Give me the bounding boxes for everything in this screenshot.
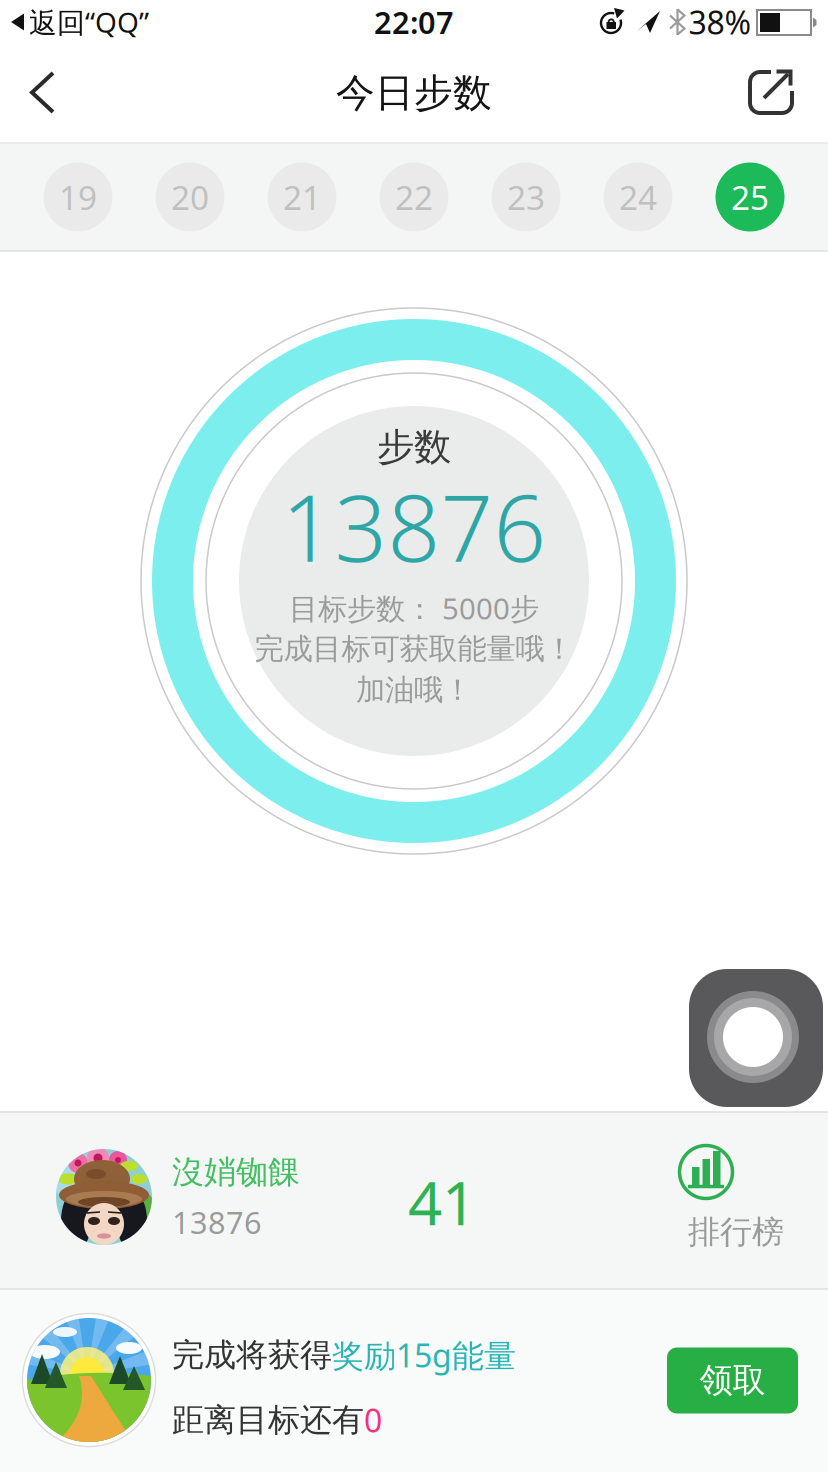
staticText: 距离目标还有 — [172, 1400, 364, 1440]
staticText: 排行榜 — [688, 1212, 784, 1252]
staticText: 38% — [688, 1, 751, 43]
staticText: 21 — [283, 175, 321, 219]
staticText: 22 — [395, 175, 433, 219]
staticText: 领取 — [699, 1360, 765, 1401]
staticText: 0 — [364, 1399, 382, 1441]
staticText: 今日步数 — [336, 69, 492, 117]
staticText: 步数 — [377, 424, 451, 470]
staticText: 完成将获得 — [172, 1335, 332, 1375]
staticText: 23 — [507, 175, 545, 219]
staticText: 返回“QQ” — [29, 3, 149, 41]
staticText: 13876 — [172, 1202, 262, 1242]
staticText: 13876 — [281, 465, 546, 587]
staticText: 加油哦！ — [356, 672, 472, 708]
staticText: 目标步数： 5000步 — [289, 588, 539, 627]
staticText: 19 — [59, 175, 97, 219]
staticText: 41 — [408, 1162, 476, 1242]
staticText: 沒娋铷餜 — [172, 1152, 300, 1192]
staticText: 完成目标可获取能量哦！ — [254, 631, 573, 667]
staticText: 22:07 — [374, 2, 454, 42]
staticText: 20 — [171, 175, 209, 219]
staticText: 24 — [619, 175, 657, 219]
staticText: 奖励15g能量 — [332, 1334, 516, 1376]
staticText: 25 — [731, 175, 769, 219]
